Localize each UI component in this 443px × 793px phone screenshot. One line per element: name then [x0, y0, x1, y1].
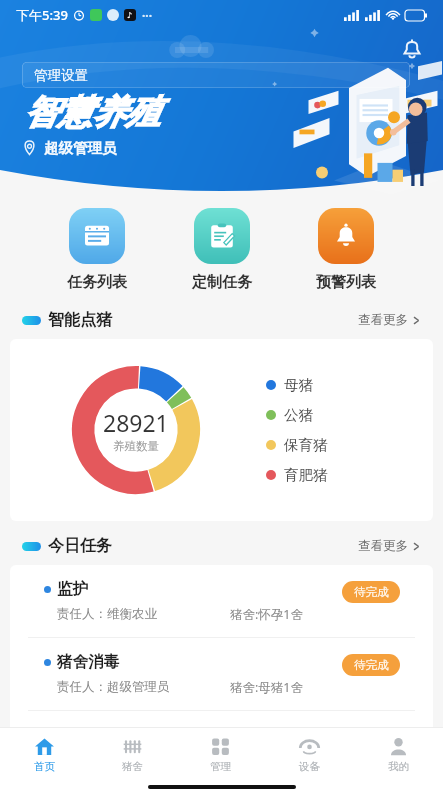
button[interactable]: 管理设置 — [22, 62, 410, 88]
button[interactable]: 监护 — [10, 565, 433, 637]
staticText: 28921 — [103, 407, 169, 438]
staticText: 猪舍 — [122, 760, 143, 773]
staticText: 智能点猪 — [48, 310, 112, 330]
button[interactable]: 首页 — [0, 728, 88, 780]
staticText: 管理设置 — [34, 67, 88, 84]
button[interactable]: 查看更多 — [350, 310, 421, 330]
staticText: 责任人：超级管理员 — [57, 752, 170, 768]
staticText: 设备 — [299, 760, 320, 773]
button[interactable]: 通知 — [395, 32, 429, 66]
button[interactable]: 查看更多 — [350, 536, 421, 556]
staticText: 定制任务 — [192, 273, 252, 292]
button[interactable]: 猪舍消毒 — [10, 638, 433, 710]
staticText: 预警列表 — [316, 273, 376, 292]
staticText: 查看更多 — [358, 538, 408, 554]
staticText: 查看更多 — [358, 312, 408, 328]
button[interactable]: 待完成 — [342, 727, 400, 749]
staticText: 待完成 — [354, 658, 389, 672]
staticText: 母猪 — [284, 376, 313, 394]
staticText: ··· — [142, 7, 153, 23]
staticText: 养殖数量 — [113, 439, 159, 453]
staticText: 猪舍:母猪1舍 — [230, 679, 304, 696]
staticText: 监护 — [57, 579, 88, 599]
staticText: ♪ — [127, 11, 133, 20]
button[interactable]: 预警列表 — [308, 206, 384, 294]
staticText: 管理 — [210, 760, 231, 773]
button[interactable]: 饲喂 — [10, 711, 433, 783]
staticText: 智慧养殖 — [24, 91, 160, 134]
staticText: 超级管理员 — [44, 139, 117, 157]
staticText: 我的 — [388, 760, 409, 773]
button[interactable]: 28921 — [10, 339, 433, 521]
button[interactable]: 待完成 — [342, 581, 400, 603]
staticText: 待完成 — [354, 585, 389, 599]
staticText: 猪舍消毒 — [57, 652, 119, 672]
staticText: 保育猪 — [284, 436, 328, 454]
staticText: 育肥猪 — [284, 466, 328, 484]
staticText: 今日任务 — [48, 536, 112, 556]
staticText: 饲喂 — [57, 725, 88, 745]
staticText: 公猪 — [284, 406, 313, 424]
button[interactable]: 猪舍 — [88, 728, 176, 780]
staticText: 猪舍:怀孕1舍 — [230, 606, 304, 623]
button[interactable]: 待完成 — [342, 654, 400, 676]
button[interactable]: 管理 — [176, 728, 265, 780]
button[interactable]: 我的 — [354, 728, 443, 780]
staticText: 猪舍:母猪1舍 — [230, 752, 304, 769]
staticText: 任务列表 — [67, 273, 127, 292]
staticText: 责任人：维衡农业 — [57, 606, 157, 622]
staticText: 首页 — [34, 760, 55, 773]
button[interactable]: 定制任务 — [184, 206, 260, 294]
button[interactable]: 设备 — [265, 728, 354, 780]
staticText: 下午5:39 — [16, 6, 68, 24]
button[interactable]: 任务列表 — [59, 206, 135, 294]
staticText: 责任人：超级管理员 — [57, 679, 170, 695]
